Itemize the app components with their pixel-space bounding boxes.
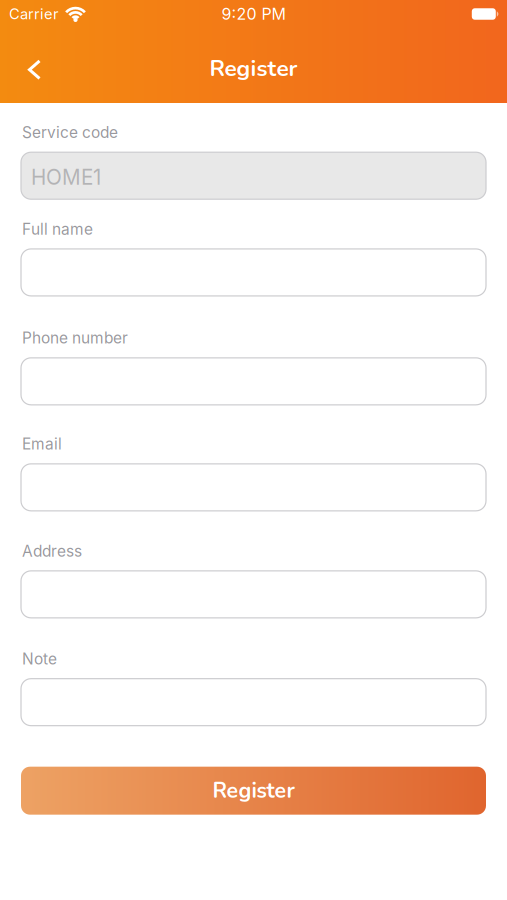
button[interactable]: Register: [21, 767, 486, 815]
staticText: Register: [209, 53, 297, 84]
button[interactable]: [21, 464, 486, 511]
staticText: 9:20 PM: [221, 4, 285, 24]
staticText: Address: [22, 542, 82, 560]
staticText: HOME1: [31, 165, 101, 190]
staticText: Note: [22, 649, 57, 668]
staticText: Service code: [22, 123, 118, 142]
staticText: Full name: [22, 220, 93, 238]
staticText: Register: [212, 776, 294, 805]
staticText: Phone number: [22, 329, 128, 347]
button[interactable]: [0, 50, 51, 87]
button[interactable]: [21, 358, 486, 405]
button[interactable]: HOME1: [21, 152, 486, 199]
button[interactable]: [21, 249, 486, 296]
button[interactable]: [21, 679, 486, 726]
button[interactable]: [21, 571, 486, 618]
staticText: Carrier: [9, 5, 59, 23]
staticText: Email: [22, 435, 62, 453]
